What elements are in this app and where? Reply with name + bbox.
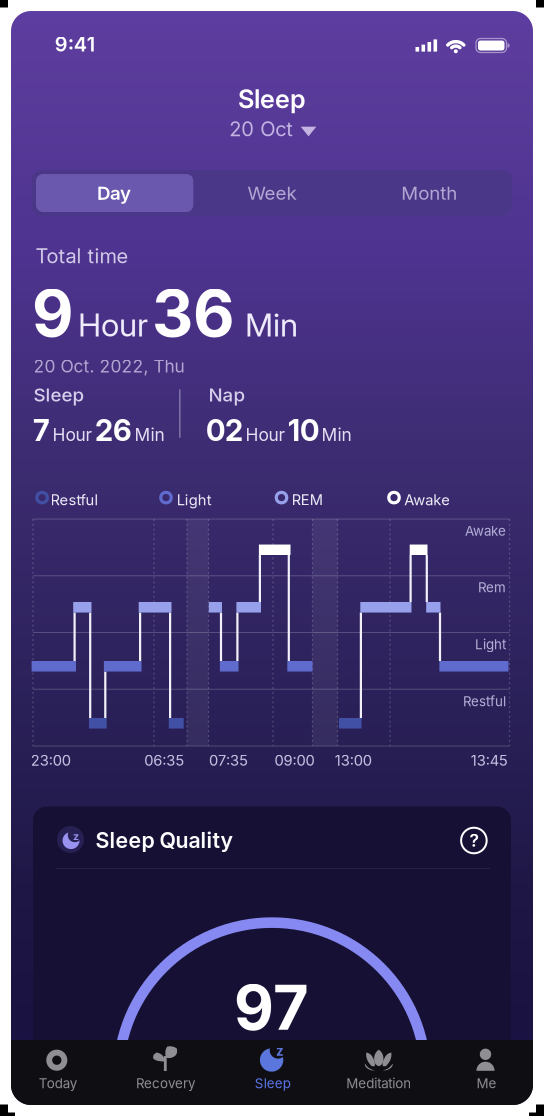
button[interactable]: Week (193, 174, 350, 212)
staticText: Min (134, 424, 164, 445)
staticText: Rem (478, 580, 506, 595)
button[interactable]: 20 Oct (229, 117, 317, 141)
staticText: Sleep (33, 384, 84, 406)
staticText: 36 (152, 275, 235, 351)
staticText: 20 Oct (229, 117, 293, 141)
staticText: 06:35 (144, 752, 184, 769)
staticText: z (73, 830, 79, 843)
staticText: Awake (465, 523, 506, 539)
staticText: 20 Oct. 2022, Thu (33, 356, 184, 376)
staticText: ? (469, 830, 478, 851)
staticText: 13:00 (335, 752, 372, 769)
staticText: Total time (35, 244, 128, 268)
staticText: Min (245, 306, 298, 344)
staticText: REM (292, 491, 323, 508)
staticText: Sleep (255, 1076, 291, 1091)
staticText: 9 (32, 275, 74, 351)
staticText: 97 (234, 971, 309, 1044)
staticText: Hour (78, 306, 148, 344)
staticText: 02 (206, 413, 243, 448)
staticText: Today (39, 1076, 77, 1091)
button[interactable]: Me (0, 0, 544, 1116)
button[interactable]: Day (0, 0, 544, 1116)
button[interactable]: z (0, 0, 544, 1116)
button[interactable]: Today (0, 0, 544, 1116)
staticText: Min (321, 424, 351, 445)
staticText: z (276, 1043, 284, 1059)
staticText: 26 (95, 413, 132, 448)
button[interactable]: Month (351, 174, 508, 212)
staticText: Month (401, 182, 457, 204)
staticText: Restful (50, 491, 98, 508)
staticText: Sleep Quality (96, 828, 233, 853)
staticText: 9:41 (55, 32, 95, 56)
staticText: 10 (288, 413, 319, 448)
staticText: Restful (463, 694, 506, 709)
staticText: Hour (245, 424, 285, 445)
button[interactable]: Help (0, 0, 544, 1116)
staticText: 7 (33, 413, 50, 448)
staticText: Light (475, 637, 506, 652)
staticText: Recovery (136, 1076, 195, 1091)
staticText: Nap (208, 384, 245, 406)
staticText: Day (97, 182, 131, 204)
staticText: Hour (52, 424, 92, 445)
staticText: Meditation (346, 1076, 411, 1091)
staticText: Light (177, 491, 212, 508)
staticText: 23:00 (31, 752, 71, 769)
staticText: Sleep (238, 84, 306, 114)
button[interactable]: Meditation (0, 0, 544, 1116)
staticText: Me (476, 1076, 496, 1091)
button[interactable]: Recovery (0, 0, 544, 1116)
staticText: Week (247, 182, 296, 204)
staticText: 07:35 (209, 752, 248, 769)
staticText: 13:45 (471, 752, 508, 769)
staticText: Awake (404, 491, 450, 508)
staticText: 09:00 (274, 752, 314, 769)
